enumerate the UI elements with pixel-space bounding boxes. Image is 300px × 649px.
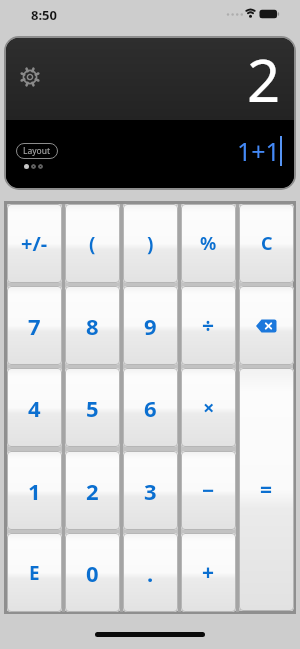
button[interactable]: ÷ — [181, 286, 236, 365]
staticText: 6 — [144, 393, 157, 423]
staticText: 3 — [144, 476, 157, 506]
staticText: 8 — [86, 311, 99, 341]
staticText: E — [29, 560, 40, 586]
button[interactable]: 3 — [123, 451, 178, 530]
button[interactable]: +/- — [7, 204, 62, 283]
button[interactable]: = — [239, 368, 294, 611]
button[interactable]: ( — [65, 204, 120, 283]
button[interactable]: 6 — [123, 368, 178, 447]
button[interactable]: 4 — [7, 368, 62, 447]
button[interactable] — [19, 66, 41, 88]
button[interactable]: 0 — [65, 533, 120, 612]
staticText: Layout — [23, 145, 51, 157]
staticText: 1+1 — [237, 134, 280, 168]
button[interactable]: 8 — [65, 286, 120, 365]
button[interactable]: ) — [123, 204, 178, 283]
staticText: × — [203, 394, 215, 421]
staticText: 9 — [144, 311, 157, 341]
staticText: + — [202, 558, 215, 587]
button[interactable]: + — [181, 533, 236, 612]
staticText: 2 — [247, 40, 281, 119]
staticText: = — [260, 475, 273, 504]
staticText: . — [147, 558, 154, 588]
button[interactable] — [239, 286, 294, 365]
button[interactable]: 1 — [7, 451, 62, 530]
staticText: ( — [89, 231, 96, 257]
button[interactable]: E — [7, 533, 62, 612]
staticText: 2 — [86, 476, 99, 506]
staticText: 5 — [86, 393, 99, 423]
staticText: ) — [147, 231, 154, 257]
staticText: 4 — [28, 393, 41, 423]
button[interactable]: − — [181, 451, 236, 530]
staticText: C — [261, 231, 273, 256]
button[interactable]: Layout — [16, 143, 58, 159]
staticText: % — [200, 231, 217, 256]
staticText: +/- — [21, 230, 48, 257]
staticText: 1 — [28, 476, 41, 506]
staticText: − — [202, 476, 215, 505]
staticText: 0 — [86, 558, 99, 588]
staticText: 7 — [28, 311, 41, 341]
button[interactable]: 7 — [7, 286, 62, 365]
button[interactable]: 5 — [65, 368, 120, 447]
button[interactable]: C — [239, 204, 294, 283]
staticText: ÷ — [202, 311, 215, 340]
staticText: 8:50 — [31, 6, 57, 24]
button[interactable]: % — [181, 204, 236, 283]
button[interactable]: . — [123, 533, 178, 612]
button[interactable]: × — [181, 368, 236, 447]
button[interactable]: 9 — [123, 286, 178, 365]
button[interactable]: 2 — [65, 451, 120, 530]
